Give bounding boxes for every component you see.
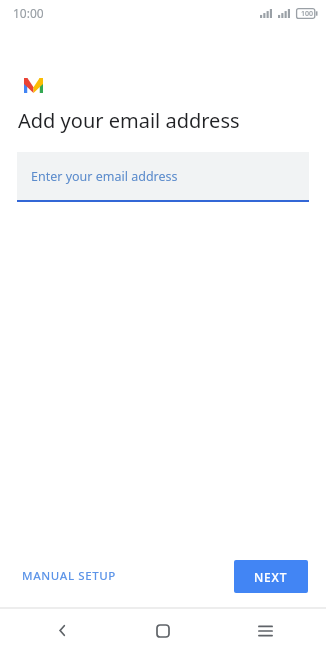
button[interactable]: Enter your email address xyxy=(17,152,309,202)
staticText: MANUAL SETUP xyxy=(22,568,116,584)
button[interactable]: Recent apps xyxy=(225,609,305,652)
staticText: Add your email address xyxy=(18,107,240,134)
staticText: Enter your email address xyxy=(31,168,178,185)
button[interactable]: Back xyxy=(22,609,102,652)
button[interactable]: MANUAL SETUP xyxy=(14,559,124,593)
staticText: 100 xyxy=(301,9,314,19)
button[interactable]: Home xyxy=(123,609,203,652)
button[interactable]: NEXT xyxy=(234,560,308,593)
staticText: 10:00 xyxy=(13,5,44,21)
staticText: NEXT xyxy=(254,569,288,585)
